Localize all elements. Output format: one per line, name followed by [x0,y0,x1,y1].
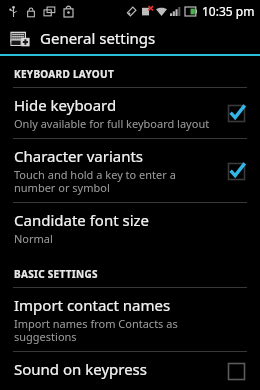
staticText: 10:35 pm [202,3,255,19]
staticText: Candidate font size [14,210,150,230]
staticText: Import contact names [14,295,171,315]
button[interactable]: Checked [222,99,250,127]
staticText: BASIC SETTINGS [14,267,98,281]
button[interactable]: Hide keyboard [0,88,260,138]
other: Keyboard settings [9,27,31,49]
staticText: General settings [40,28,156,48]
button[interactable]: Import contact names [0,288,260,351]
button[interactable]: Candidate font size [0,203,260,253]
staticText: Hide keyboard [14,95,117,115]
button[interactable]: Unchecked [222,359,250,383]
staticText: Import names from Contacts as suggestion… [14,316,222,344]
button[interactable]: Character variants [0,139,260,202]
staticText: Only available for full keyboard layout [14,116,210,131]
button[interactable]: Checked [222,157,250,185]
staticText: KEYBOARD LAYOUT [14,67,114,81]
button[interactable]: Sound on keypress [0,352,260,390]
staticText: Touch and hold a key to enter a number o… [14,167,214,195]
button[interactable]: Keyboard settings [0,22,260,54]
staticText: Character variants [14,146,144,166]
staticText: Sound on keypress [14,359,147,379]
staticText: Normal [14,231,53,246]
